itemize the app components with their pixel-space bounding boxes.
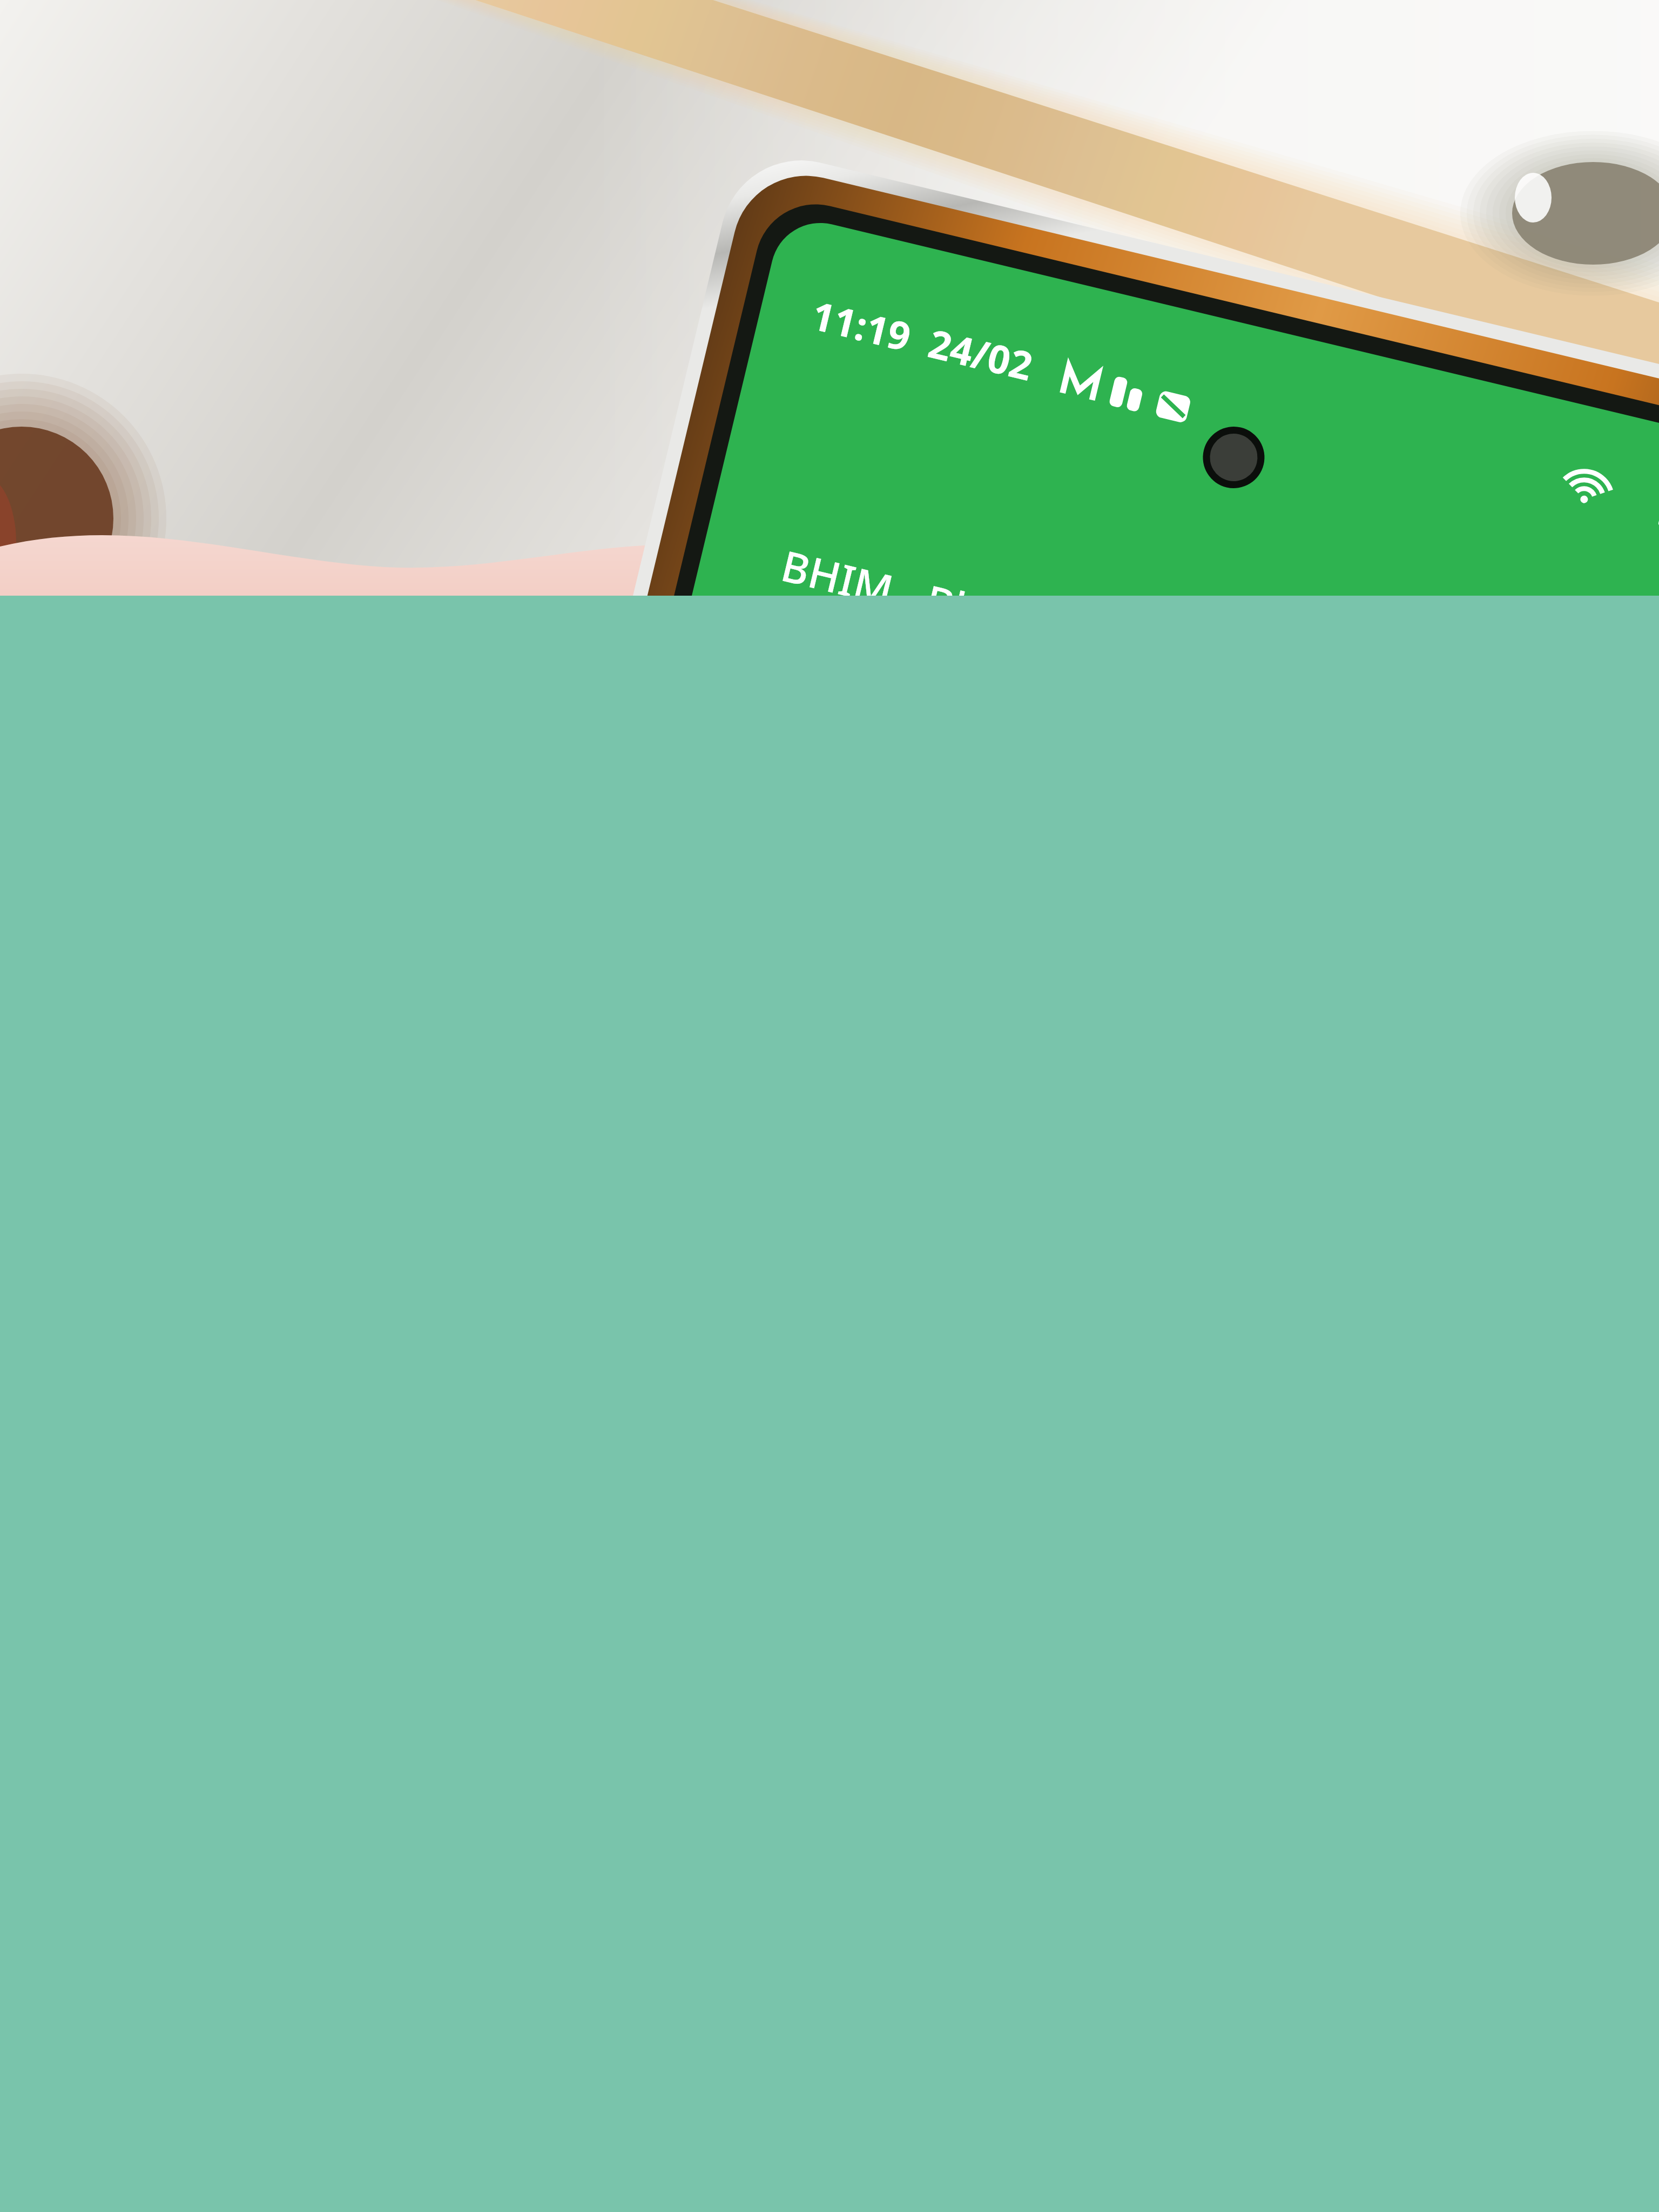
button[interactable]: BHIM payments app screenshot (0, 0, 1659, 2212)
